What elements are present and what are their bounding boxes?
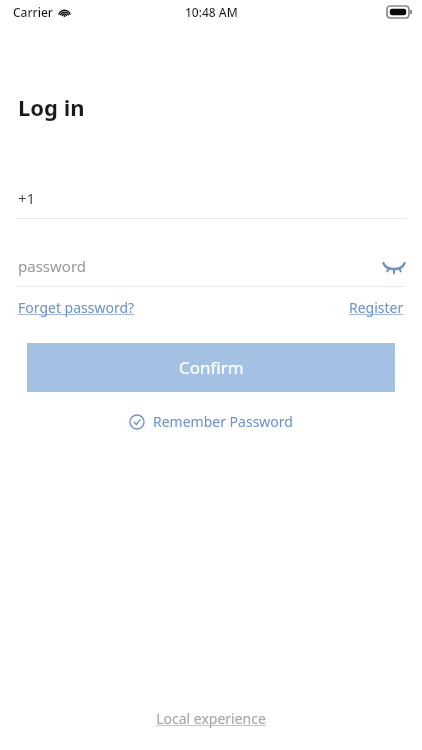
button[interactable]: password (0, 246, 422, 286)
staticText: Carrier (13, 4, 53, 20)
staticText: Remember Password (153, 412, 293, 431)
staticText: Forget password? (18, 298, 135, 317)
button[interactable]: Show password (378, 250, 410, 282)
staticText: Confirm (179, 356, 244, 379)
button[interactable]: Register (349, 298, 404, 317)
staticText: Local experience (156, 709, 266, 728)
button[interactable]: Confirm (27, 343, 395, 392)
button[interactable]: Forget password? (18, 298, 135, 317)
staticText: 10:48 AM (185, 4, 238, 20)
button[interactable]: +1 (0, 178, 422, 218)
staticText: Register (349, 298, 404, 317)
button[interactable]: Local experience (156, 709, 266, 728)
staticText: +1 (18, 188, 36, 208)
staticText: Log in (18, 92, 85, 122)
staticText: password (18, 256, 86, 276)
button[interactable]: Remember Password (123, 408, 299, 435)
